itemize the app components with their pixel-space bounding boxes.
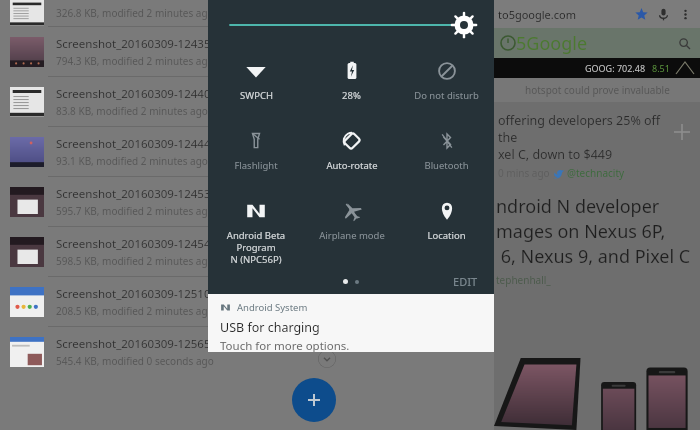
button[interactable]: Screenshot_20160309-124535.p (0, 177, 494, 226)
button[interactable]: EDIT (437, 270, 494, 293)
staticText: Screenshot_20160309-124448.p (56, 136, 228, 152)
staticText: xel C, down to $449 (498, 146, 613, 163)
staticText: 83.8 KB, modified 2 minutes ago (56, 104, 208, 118)
staticText: 0 mins ago (498, 166, 553, 180)
button[interactable]: Expand (318, 350, 336, 368)
staticText: SWPCH (240, 89, 273, 102)
button[interactable]: More options (674, 3, 696, 25)
staticText: Android Beta Program N (NPC56P) (208, 229, 304, 266)
staticText: ndroid N developer (496, 194, 660, 219)
button[interactable]: Android System (208, 294, 494, 352)
button[interactable]: Add (672, 122, 692, 142)
button[interactable]: Do not disturb (399, 58, 494, 104)
button[interactable]: Android Beta Program N (NPC56P) (208, 198, 304, 268)
staticText: Screenshot_20160309-125651.png (56, 336, 242, 352)
staticText: @technacity (567, 166, 625, 180)
staticText: hotspot could prove invaluable (525, 83, 670, 97)
button[interactable]: Voice search (652, 3, 674, 25)
staticText: Do not disturb (414, 89, 479, 102)
button[interactable]: Screenshot_20160309-125651.png (0, 327, 494, 376)
staticText: tephenhall_ (496, 273, 551, 287)
staticText: 5Google (516, 31, 588, 56)
button[interactable]: Screenshot_20160309-124549.p (0, 227, 494, 276)
staticText: 794.3 KB, modified 2 minutes ago (56, 54, 214, 68)
staticText: Bluetooth (424, 159, 469, 172)
button[interactable]: Screenshot_20160309-124352.p (0, 27, 494, 76)
button[interactable]: Search (674, 33, 694, 53)
button[interactable]: Add (292, 378, 336, 422)
button[interactable]: Screenshot_20160309-124448.p (0, 127, 494, 176)
staticText: EDIT (453, 274, 478, 289)
staticText: to5google.com (498, 7, 576, 22)
button[interactable]: 326.8 KB, modified 2 minutes ago (0, 0, 494, 26)
staticText: 6, Nexus 9, and Pixel C (496, 244, 691, 269)
staticText: Screenshot_20160309-124352.p (56, 36, 228, 52)
staticText: GOOG: 702.48 (585, 62, 646, 74)
button[interactable]: Screenshot_20160309-125102.p (0, 277, 494, 326)
staticText: Location (427, 229, 466, 242)
staticText: Screenshot_20160309-124549.p (56, 236, 228, 252)
button[interactable]: SWPCH (208, 58, 304, 104)
staticText: Screenshot_20160309-124535.p (56, 186, 228, 202)
staticText: 28% (342, 89, 361, 102)
button[interactable]: Bluetooth (399, 128, 494, 174)
staticText: mages on Nexus 6P, (496, 219, 666, 244)
button[interactable]: Auto-rotate (304, 128, 399, 174)
button[interactable]: Screenshot_20160309-124407.p (0, 77, 494, 126)
staticText: Auto-rotate (326, 159, 378, 172)
staticText: Android System (237, 301, 308, 314)
staticText: offering developers 25% off the (498, 112, 672, 146)
button[interactable]: Bookmark (630, 3, 652, 25)
staticText: USB for charging (220, 319, 320, 336)
staticText: 326.8 KB, modified 2 minutes ago (56, 6, 214, 20)
staticText: 93.1 KB, modified 2 minutes ago (56, 154, 208, 168)
staticText: 8.51 (652, 62, 670, 74)
button[interactable]: Location (399, 198, 494, 244)
staticText: 598.5 KB, modified 2 minutes ago (56, 254, 214, 268)
staticText: 545.4 KB, modified 0 seconds ago (56, 354, 214, 368)
button[interactable]: Airplane mode (304, 198, 399, 244)
staticText: Screenshot_20160309-124407.p (56, 86, 228, 102)
staticText: 595.7 KB, modified 2 minutes ago (56, 204, 214, 218)
button[interactable]: 28% (304, 58, 399, 104)
staticText: Screenshot_20160309-125102.p (56, 286, 228, 302)
button[interactable]: Brightness (208, 14, 494, 36)
staticText: Airplane mode (319, 229, 385, 242)
staticText: 208.5 KB, modified 2 minutes ago (56, 304, 214, 318)
button[interactable]: Flashlight (208, 128, 304, 174)
staticText: Flashlight (234, 159, 278, 172)
staticText: Touch for more options. (220, 338, 350, 352)
